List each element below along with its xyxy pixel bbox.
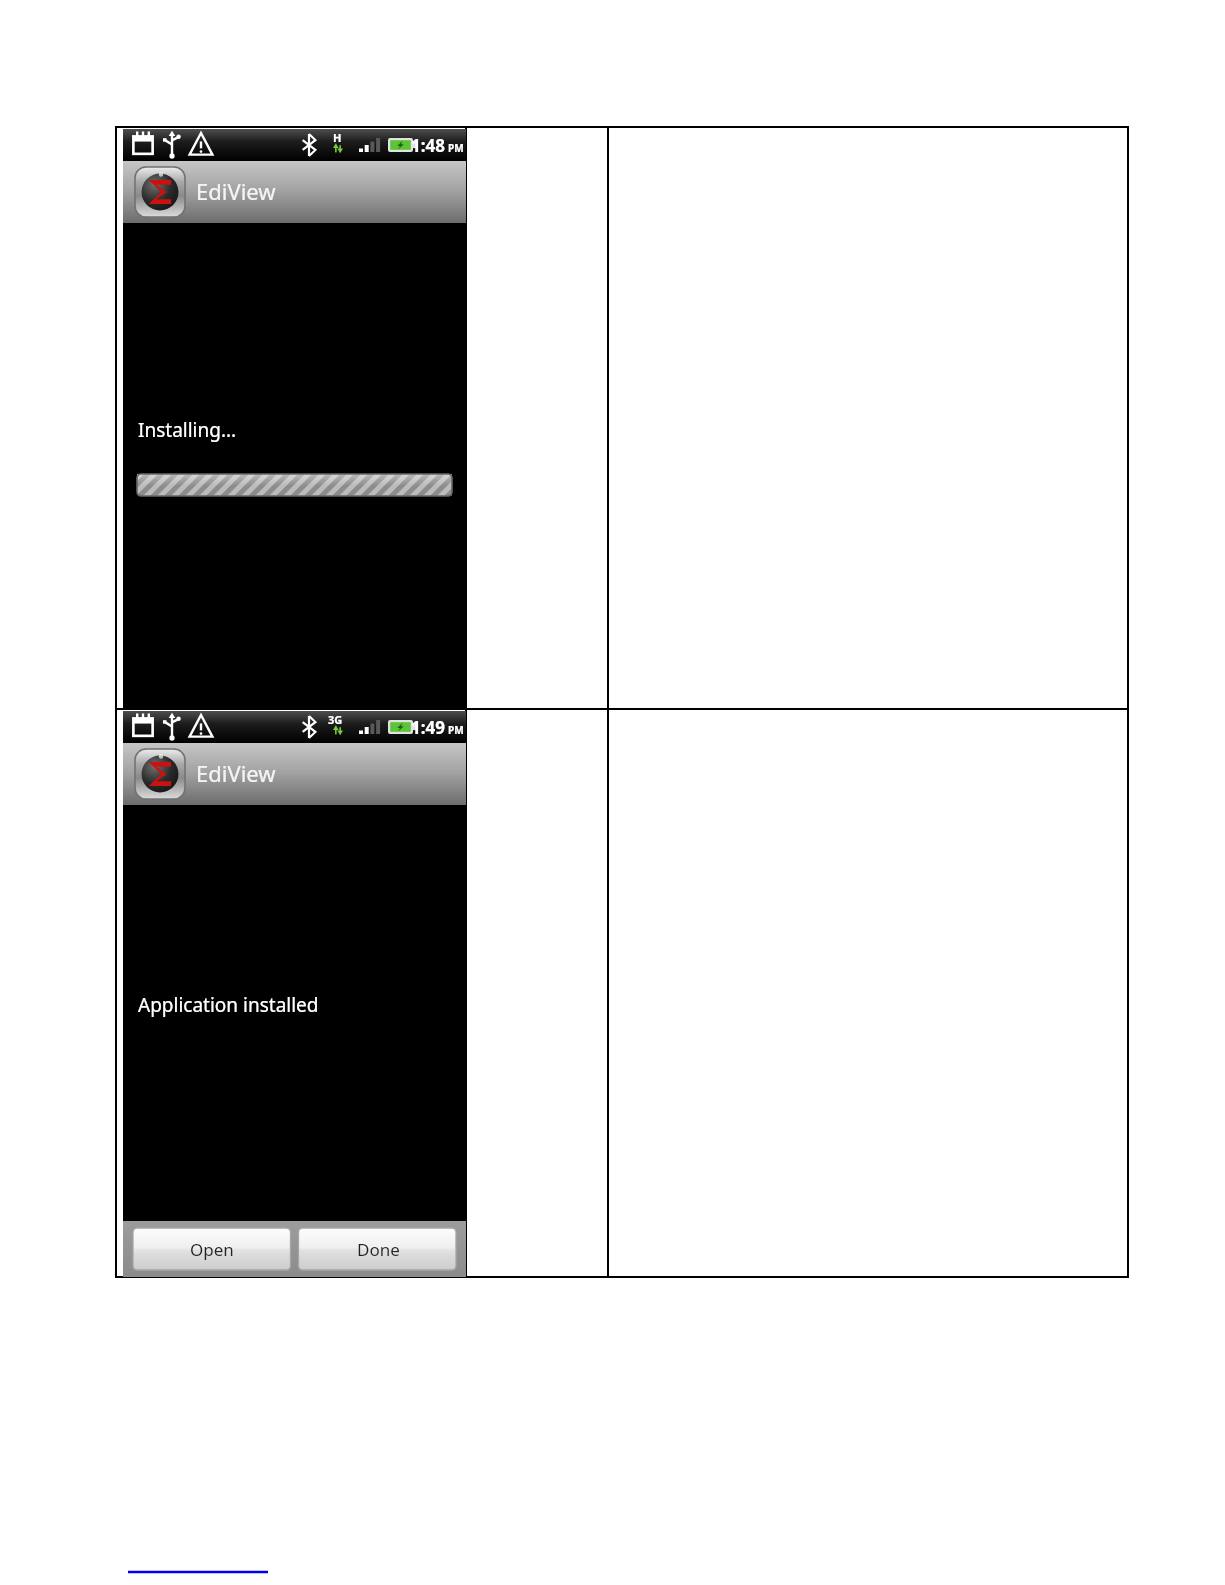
button[interactable]: EdiView bbox=[123, 161, 466, 223]
staticText: PM bbox=[448, 723, 464, 737]
button[interactable]: EdiView bbox=[123, 743, 466, 805]
staticText: PM bbox=[448, 141, 464, 155]
staticText: 1:48 bbox=[411, 134, 445, 157]
staticText: H bbox=[333, 130, 342, 145]
staticText: EdiView bbox=[196, 758, 276, 788]
staticText: Installing... bbox=[138, 417, 237, 443]
staticText: EdiView bbox=[196, 176, 276, 206]
staticText: 3G bbox=[328, 712, 343, 727]
staticText: Done bbox=[357, 1238, 400, 1261]
button[interactable]: Done bbox=[299, 1228, 457, 1270]
button[interactable]: Open bbox=[133, 1228, 291, 1270]
staticText: 1:49 bbox=[411, 716, 445, 739]
staticText: Application installed bbox=[138, 992, 319, 1018]
staticText: Open bbox=[190, 1238, 234, 1261]
